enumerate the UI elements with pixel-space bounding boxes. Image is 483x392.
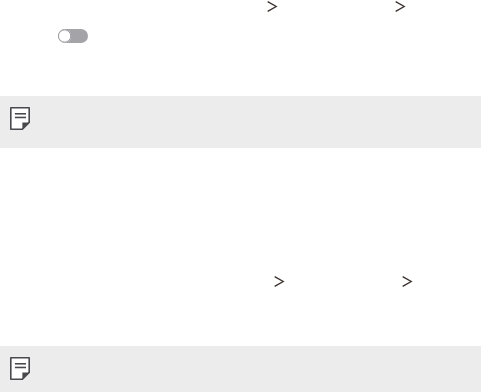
button[interactable]: Open settings	[310, 270, 414, 293]
button[interactable]: Open details	[182, 270, 286, 293]
button[interactable]: Note	[0, 96, 481, 148]
button[interactable]: Open details	[175, 0, 279, 18]
button[interactable]: Open settings	[303, 0, 407, 18]
button[interactable]: Note	[0, 346, 481, 392]
button[interactable]: Enable option	[51, 22, 95, 50]
